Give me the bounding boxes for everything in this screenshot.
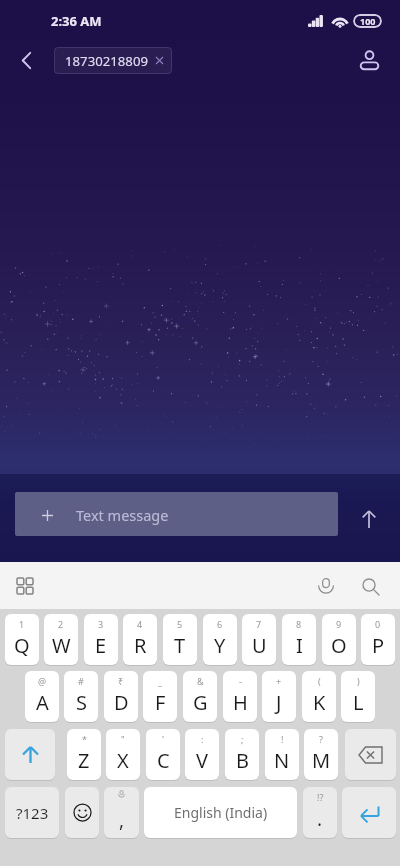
- staticText: ₹: [118, 675, 124, 687]
- staticText: G: [193, 689, 208, 716]
- staticText: Z: [78, 747, 90, 774]
- staticText: (: [318, 675, 321, 687]
- staticText: 3: [98, 618, 104, 630]
- button[interactable]: 8: [282, 614, 316, 665]
- staticText: 9: [336, 618, 342, 630]
- button[interactable]: Text message: [15, 492, 338, 536]
- button[interactable]: (: [302, 671, 336, 722]
- staticText: 5: [177, 618, 183, 630]
- staticText: ): [357, 675, 360, 687]
- staticText: A: [36, 689, 49, 716]
- button[interactable]: ?123: [5, 787, 59, 838]
- button[interactable]: 0: [361, 614, 395, 665]
- button[interactable]: Shift: [5, 729, 55, 780]
- staticText: I: [296, 632, 303, 659]
- button[interactable]: ?: [304, 729, 338, 780]
- staticText: +: [276, 675, 282, 687]
- staticText: B: [236, 747, 249, 774]
- button[interactable]: +: [262, 671, 296, 722]
- button[interactable]: 18730218809: [54, 47, 172, 74]
- button[interactable]: English (India): [144, 787, 297, 838]
- staticText: ": [121, 733, 125, 745]
- staticText: 0: [375, 618, 381, 630]
- staticText: U: [252, 632, 267, 659]
- staticText: Y: [214, 632, 226, 659]
- button[interactable]: ": [106, 729, 140, 780]
- staticText: W: [52, 632, 71, 659]
- button[interactable]: Back: [7, 41, 45, 79]
- button[interactable]: ,: [104, 787, 139, 838]
- button[interactable]: 3: [84, 614, 118, 665]
- staticText: Text message: [76, 505, 169, 525]
- staticText: 2: [58, 618, 64, 630]
- staticText: N: [274, 747, 290, 774]
- button[interactable]: _: [143, 671, 177, 722]
- button[interactable]: Send: [349, 499, 389, 539]
- button[interactable]: &: [183, 671, 217, 722]
- staticText: !: [281, 733, 284, 745]
- staticText: V: [196, 747, 208, 774]
- staticText: English (India): [174, 803, 268, 822]
- button[interactable]: ': [146, 729, 180, 780]
- staticText: P: [372, 632, 385, 659]
- button[interactable]: *: [67, 729, 101, 780]
- button[interactable]: !: [265, 729, 299, 780]
- staticText: Q: [14, 632, 30, 659]
- staticText: ,: [119, 807, 125, 833]
- staticText: .: [317, 806, 323, 832]
- staticText: K: [313, 689, 326, 716]
- staticText: #: [78, 675, 84, 687]
- button[interactable]: Keyboard menu: [8, 569, 42, 603]
- staticText: ?: [319, 733, 323, 745]
- staticText: D: [114, 689, 129, 716]
- staticText: C: [157, 747, 170, 774]
- button[interactable]: ;: [225, 729, 259, 780]
- staticText: 4: [137, 618, 143, 630]
- button[interactable]: Emoji: [65, 787, 99, 838]
- staticText: ': [162, 733, 165, 745]
- staticText: L: [353, 689, 364, 716]
- button[interactable]: Enter: [342, 787, 396, 838]
- button[interactable]: 2: [44, 614, 78, 665]
- staticText: 8: [296, 618, 302, 630]
- button[interactable]: 7: [242, 614, 276, 665]
- button[interactable]: @: [25, 671, 59, 722]
- staticText: T: [174, 632, 186, 659]
- button[interactable]: 1: [5, 614, 39, 665]
- staticText: S: [76, 689, 87, 716]
- staticText: J: [276, 689, 282, 716]
- button[interactable]: 4: [123, 614, 157, 665]
- staticText: X: [117, 747, 129, 774]
- staticText: M: [312, 747, 331, 774]
- staticText: 2:36 AM: [51, 12, 102, 30]
- staticText: 100: [360, 15, 376, 27]
- staticText: -: [239, 675, 242, 687]
- staticText: &: [197, 675, 204, 687]
- button[interactable]: :: [185, 729, 219, 780]
- staticText: R: [134, 632, 147, 659]
- staticText: ;: [241, 733, 244, 745]
- button[interactable]: -: [223, 671, 257, 722]
- staticText: ?123: [16, 803, 49, 823]
- staticText: _: [158, 675, 162, 687]
- button[interactable]: Voice input: [308, 569, 343, 604]
- button[interactable]: Contact details: [351, 41, 388, 78]
- button[interactable]: Search: [353, 569, 388, 604]
- staticText: !?: [317, 791, 324, 803]
- staticText: E: [95, 632, 107, 659]
- button[interactable]: ): [341, 671, 375, 722]
- button[interactable]: !?: [303, 787, 337, 838]
- button[interactable]: 9: [322, 614, 356, 665]
- staticText: O: [331, 632, 347, 659]
- staticText: @: [38, 675, 47, 687]
- staticText: *: [82, 733, 87, 745]
- button[interactable]: 6: [203, 614, 237, 665]
- button[interactable]: 5: [163, 614, 197, 665]
- staticText: :: [201, 733, 204, 745]
- staticText: F: [155, 689, 166, 716]
- staticText: H: [233, 689, 248, 716]
- staticText: 6: [217, 618, 223, 630]
- button[interactable]: Delete: [345, 729, 396, 780]
- button[interactable]: #: [64, 671, 98, 722]
- button[interactable]: ₹: [104, 671, 138, 722]
